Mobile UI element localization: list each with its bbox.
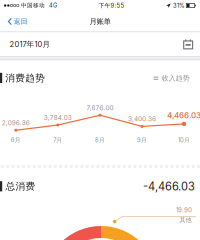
button[interactable]: 收入趋势: [150, 71, 193, 85]
staticText: 中国移动: [19, 2, 45, 9]
staticText: 8月: [95, 136, 105, 144]
staticText: 总消费: [5, 180, 35, 192]
staticText: 4G: [45, 2, 57, 9]
staticText: 6月: [11, 136, 21, 144]
staticText: 31%: [171, 2, 185, 9]
staticText: 3,400.36: [128, 115, 156, 123]
button[interactable]: 2017年10月: [0, 32, 200, 56]
staticText: 7月: [53, 136, 62, 144]
staticText: 其他: [179, 216, 191, 224]
staticText: 19.90: [176, 206, 192, 214]
button[interactable]: 返回: [0, 11, 50, 32]
staticText: 4,466.03: [167, 110, 200, 120]
staticText: 2017年10月: [9, 39, 50, 49]
staticText: 消费趋势: [5, 72, 45, 84]
staticText: 9月: [137, 136, 147, 144]
staticText: 10月: [178, 136, 190, 144]
staticText: 收入趋势: [162, 74, 190, 82]
staticText: 下午9:55: [98, 2, 124, 9]
staticText: 2,096.36: [2, 119, 30, 127]
staticText: 7,676.00: [86, 104, 113, 112]
staticText: 月账单: [89, 17, 110, 26]
staticText: 3,784.03: [44, 114, 72, 121]
staticText: -4,466.03: [143, 180, 195, 193]
staticText: 返回: [14, 17, 28, 26]
